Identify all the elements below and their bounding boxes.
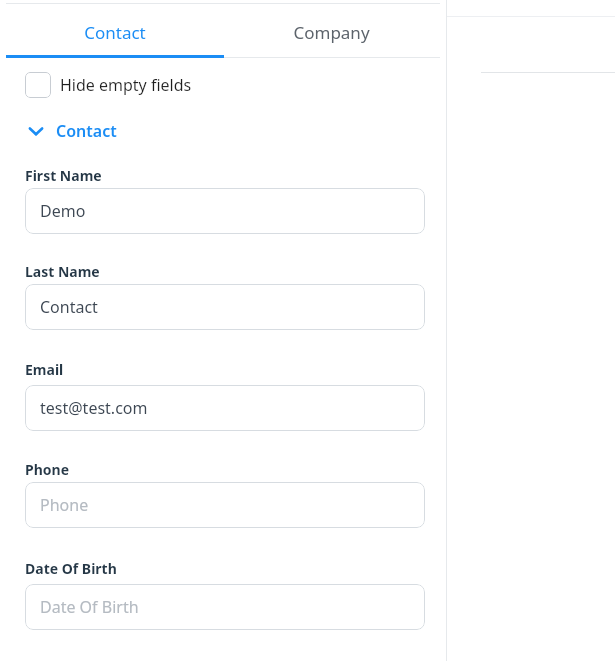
staticText: Contact	[40, 296, 98, 318]
staticText: Email	[25, 360, 64, 379]
staticText: First Name	[25, 166, 102, 185]
staticText: Date Of Birth	[40, 596, 139, 618]
button[interactable]: Contact	[6, 10, 223, 55]
staticText: Phone	[40, 494, 89, 516]
button[interactable]: Collapse Contact section	[25, 116, 117, 146]
staticText: Contact	[84, 21, 146, 44]
button[interactable]: Contact	[25, 284, 425, 330]
staticText: Date Of Birth	[25, 559, 117, 578]
staticText: Company	[293, 21, 370, 44]
button[interactable]: Demo	[25, 188, 425, 234]
staticText: Contact	[56, 120, 117, 142]
staticText: test@test.com	[40, 397, 148, 419]
other: Collapse Contact section	[25, 120, 47, 142]
staticText: Last Name	[25, 262, 100, 281]
button[interactable]: Phone	[25, 482, 425, 528]
button[interactable]: Date Of Birth	[25, 584, 425, 630]
staticText: Phone	[25, 460, 70, 479]
staticText: Hide empty fields	[60, 74, 192, 96]
button[interactable]: Company	[223, 10, 440, 55]
staticText: Demo	[40, 200, 86, 222]
button[interactable]: Hide empty fields	[25, 68, 192, 102]
button[interactable]: test@test.com	[25, 385, 425, 431]
